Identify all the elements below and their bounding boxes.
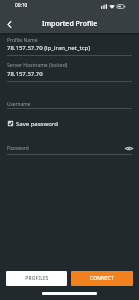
staticText: PROFILES — [25, 275, 49, 282]
button[interactable]: Show password — [123, 142, 135, 154]
staticText: Imported Profile — [42, 19, 98, 29]
staticText: 00:10 — [15, 2, 28, 9]
button[interactable]: Back — [0, 15, 19, 34]
staticText: Username — [7, 101, 31, 108]
button[interactable]: Save password — [6, 119, 58, 128]
button[interactable]: Username — [0, 97, 139, 109]
staticText: Password — [7, 145, 29, 152]
staticText: 78.157.57.70 — [7, 70, 43, 78]
button[interactable]: CONNECT — [71, 271, 133, 286]
staticText: 78.157.57.70 (ip_iran_net_tcp) — [7, 44, 91, 52]
staticText: CONNECT — [90, 275, 114, 282]
staticText: Server Hostname (locked) — [7, 62, 68, 69]
staticText: Save password — [16, 120, 58, 128]
staticText: Profile Name — [7, 37, 38, 44]
button[interactable]: PROFILES — [6, 271, 67, 286]
